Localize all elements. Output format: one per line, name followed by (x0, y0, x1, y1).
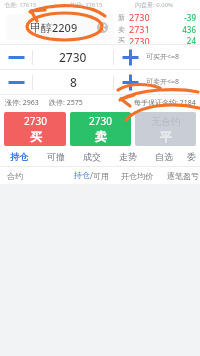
staticText: 2730 (89, 114, 112, 128)
staticText: 仓差: 17615 (4, 1, 70, 9)
button[interactable]: Clear (94, 19, 110, 35)
button[interactable]: 2730 (4, 112, 66, 146)
staticText: 2731 (129, 23, 155, 35)
staticText: 成交 (83, 151, 101, 162)
staticText: 2730 (59, 49, 87, 65)
staticText: 开仓均价 (121, 171, 153, 181)
button[interactable]: 成交 (74, 147, 110, 166)
staticText: 跌停: 2575 (49, 98, 83, 108)
button[interactable]: 走势 (110, 147, 146, 166)
staticText: /可用 (90, 170, 109, 181)
staticText: 持仓 (74, 170, 90, 180)
staticText: 均价: 17615 (70, 1, 135, 9)
staticText: 自选 (155, 151, 173, 162)
staticText: 可撤 (47, 151, 65, 162)
staticText: 8 (70, 74, 77, 90)
staticText: 卖 (95, 129, 107, 144)
button[interactable]: Increase (114, 45, 146, 69)
button[interactable]: 甲醇2209 (6, 14, 114, 40)
staticText: 2730 (129, 11, 155, 23)
staticText: 新 (118, 13, 125, 22)
staticText: 卖 (118, 25, 125, 34)
staticText: 436 (182, 24, 196, 35)
staticText: 内盘量: 0.00% (135, 1, 200, 9)
staticText: 逐笔盈亏 (167, 171, 199, 181)
staticText: 可买开<=8 (146, 52, 180, 62)
button[interactable]: 无合约 (135, 112, 196, 146)
button[interactable]: Decrease (0, 45, 32, 69)
staticText: 甲醇2209 (30, 20, 78, 35)
staticText: 走势 (119, 151, 137, 162)
staticText: 合约 (7, 171, 23, 181)
staticText: 持仓 (10, 151, 28, 162)
staticText: 买 (118, 35, 125, 44)
button[interactable]: Decrease (0, 70, 32, 94)
staticText: 涨停: 2963 (5, 98, 39, 108)
button[interactable]: 自选 (146, 147, 182, 166)
staticText: 买 (30, 129, 42, 144)
staticText: 无合约 (151, 115, 181, 128)
button[interactable]: 2730 (70, 112, 131, 146)
staticText: 委 (187, 151, 196, 162)
button[interactable]: Increase (114, 70, 146, 94)
button[interactable]: 持仓 (0, 147, 37, 166)
staticText: 24 (186, 35, 196, 44)
staticText: 2730 (129, 35, 155, 44)
button[interactable]: 可撤 (37, 147, 74, 166)
staticText: 2730 (24, 114, 47, 128)
staticText: 每手保证金约: 2184 (134, 98, 196, 108)
staticText: 平 (160, 129, 172, 144)
staticText: -39 (184, 12, 196, 23)
button[interactable]: 委 (182, 147, 200, 166)
staticText: 可卖开<=8 (146, 77, 180, 87)
